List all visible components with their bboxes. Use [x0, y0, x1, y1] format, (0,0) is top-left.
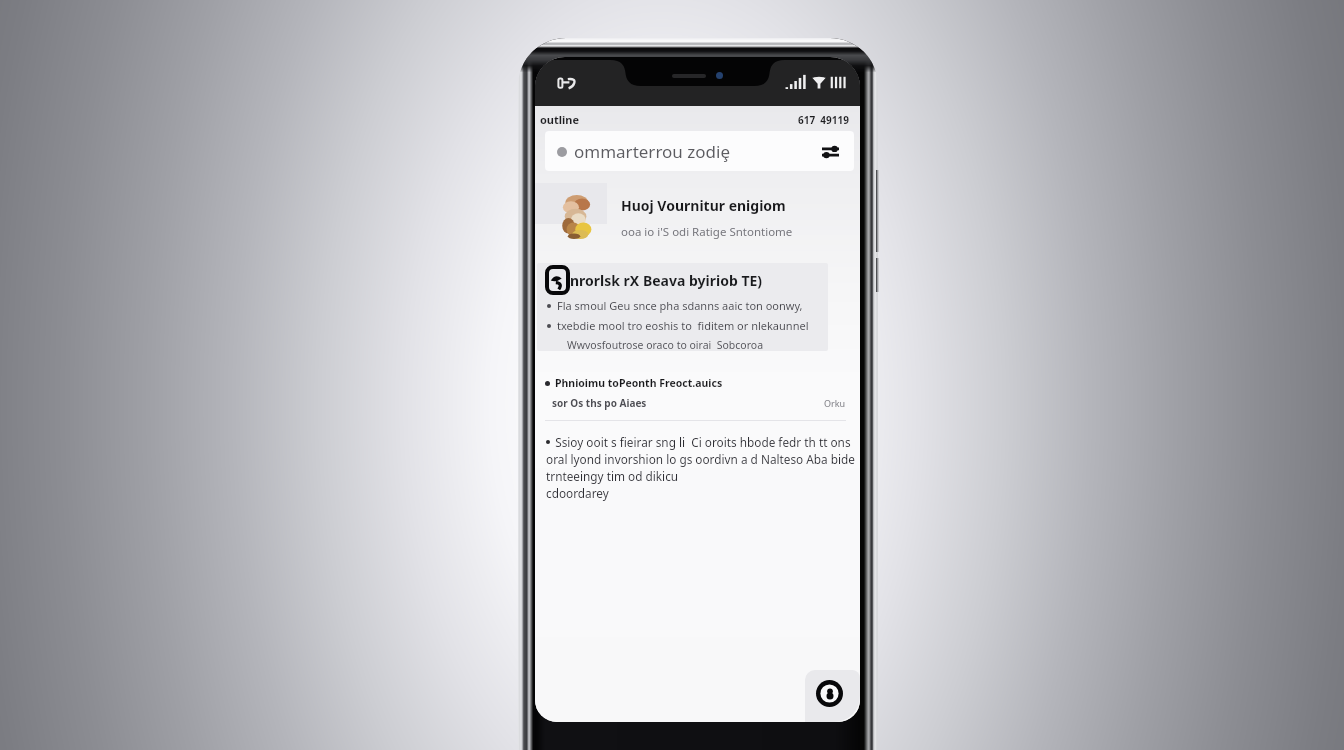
button[interactable]: nrorlsk rX Beava byiriob TE) — [537, 263, 828, 351]
button[interactable]: Create new entry — [805, 670, 860, 722]
button[interactable]: ommarterrou zodiȩ — [545, 131, 854, 171]
button[interactable]: Phnioimu toPeonth Freoct.auics — [535, 376, 860, 421]
button[interactable]: Huoj Vournitur enigiom — [535, 182, 860, 252]
staticText: txebdie mool tro eoshis to fiditem or nl… — [557, 318, 809, 333]
staticText: Fla smoul Geu snce pha sdanns aaic ton o… — [557, 298, 803, 313]
staticText: Ssioy ooit s fieirar sng li Ci oroits hb… — [546, 434, 855, 501]
other: Notification — [557, 77, 577, 89]
staticText: Wwvosfoutrose oraco to oirai Sobcoroa — [567, 338, 764, 351]
staticText: ommarterrou zodiȩ — [574, 140, 730, 163]
other: Filter options — [822, 146, 839, 158]
staticText: ooa io i'S odi Ratige Sntontiome — [621, 224, 793, 240]
staticText: 617 49119 — [798, 113, 849, 127]
staticText: Orku — [824, 397, 846, 409]
staticText: sor Os ths po Aiaes — [552, 396, 647, 410]
staticText: Huoj Vournitur enigiom — [621, 196, 786, 215]
staticText: outline — [540, 112, 580, 127]
staticText: nrorlsk rX Beava byiriob TE) — [570, 271, 763, 290]
staticText: Phnioimu toPeonth Freoct.auics — [555, 376, 723, 390]
